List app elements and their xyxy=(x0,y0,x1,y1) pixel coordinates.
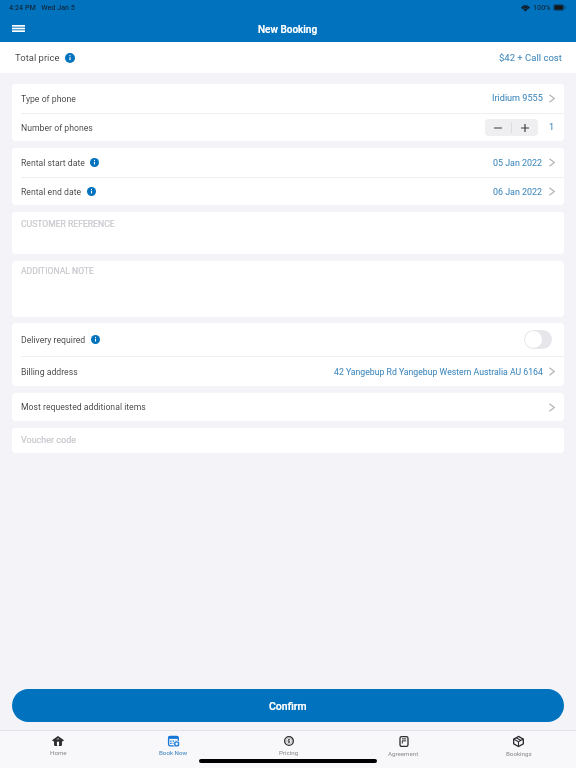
staticText: Iridium 9555 xyxy=(492,93,543,104)
staticText: Voucher code xyxy=(21,435,77,446)
staticText: Delivery required xyxy=(21,335,86,345)
staticText: 42 Yangebup Rd Yangebup Western Australi… xyxy=(334,367,543,377)
staticText: New Booking xyxy=(258,24,318,36)
staticText: 06 Jan 2022 xyxy=(493,187,543,197)
staticText: 05 Jan 2022 xyxy=(493,158,543,168)
button[interactable]: Rental end date xyxy=(12,178,564,205)
button[interactable]: Book Now xyxy=(116,730,231,768)
button[interactable]: Type of phone xyxy=(12,84,564,113)
button[interactable]: Menu xyxy=(9,19,28,38)
button[interactable]: Decrease number of phones xyxy=(485,119,511,136)
staticText: Rental start date xyxy=(21,158,85,168)
staticText: Most requested additional items xyxy=(21,402,146,412)
staticText: Confirm xyxy=(269,700,307,712)
staticText: 4:24 PM Wed Jan 5 xyxy=(9,3,75,11)
button[interactable]: Agreement xyxy=(346,730,461,768)
staticText: 1 xyxy=(549,122,555,133)
button[interactable]: Billing address xyxy=(12,357,564,386)
staticText: Pricing xyxy=(279,749,299,756)
button[interactable]: Home xyxy=(0,730,116,768)
button[interactable]: CUSTOMER REFERENCE xyxy=(12,212,564,254)
staticText: Rental end date xyxy=(21,187,82,197)
button[interactable]: Rental start date xyxy=(12,148,564,177)
button[interactable]: ADDITIONAL NOTE xyxy=(12,261,564,317)
staticText: Home xyxy=(50,749,67,756)
staticText: $42 + Call cost xyxy=(499,52,562,63)
button[interactable]: Bookings xyxy=(461,730,576,768)
button[interactable]: Most requested additional items xyxy=(12,393,564,421)
button[interactable]: Voucher code xyxy=(12,428,564,453)
button[interactable]: Confirm xyxy=(12,689,564,722)
button[interactable]: Pricing xyxy=(231,730,346,768)
staticText: Billing address xyxy=(21,367,78,377)
staticText: 100% xyxy=(533,3,551,11)
staticText: Number of phones xyxy=(21,123,93,133)
staticText: Type of phone xyxy=(21,94,76,104)
staticText: Total price xyxy=(15,52,60,63)
staticText: CUSTOMER REFERENCE xyxy=(21,219,115,229)
button[interactable]: Increase number of phones xyxy=(512,119,538,136)
button[interactable]: Delivery required xyxy=(524,330,552,349)
staticText: Bookings xyxy=(506,750,532,757)
staticText: Book Now xyxy=(159,749,188,756)
staticText: ADDITIONAL NOTE xyxy=(21,266,94,276)
staticText: Agreement xyxy=(388,750,419,757)
